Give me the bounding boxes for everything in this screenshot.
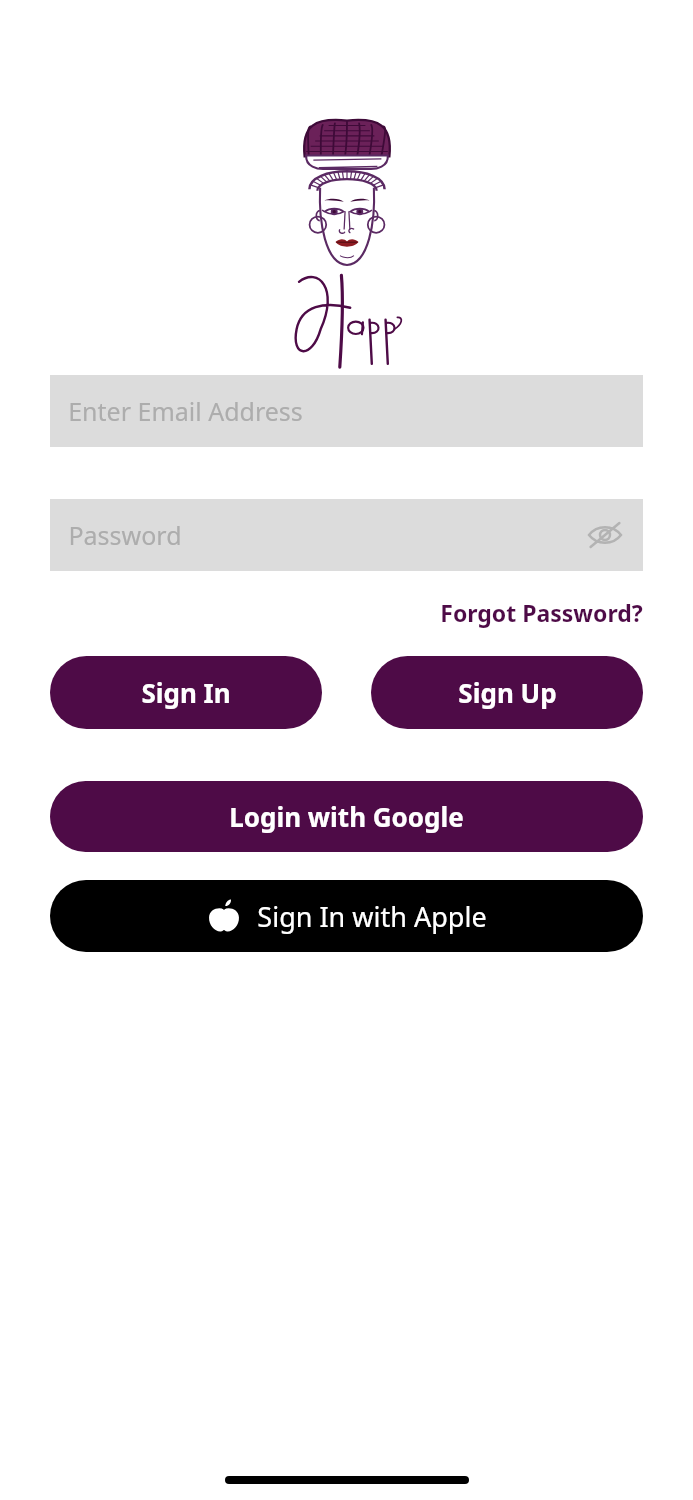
staticText: Sign Up bbox=[458, 675, 557, 710]
button[interactable]: Sign In with Apple bbox=[50, 880, 643, 952]
staticText: Sign In with Apple bbox=[257, 898, 487, 935]
staticText: Forgot Password? bbox=[440, 597, 643, 628]
staticText: Login with Google bbox=[229, 799, 464, 834]
button[interactable]: Sign Up bbox=[371, 656, 643, 729]
staticText: Password bbox=[68, 518, 182, 552]
button[interactable]: Toggle password visibility bbox=[577, 507, 633, 563]
button[interactable]: Forgot Password? bbox=[440, 593, 643, 632]
staticText: Sign In bbox=[141, 675, 231, 710]
button[interactable]: Login with Google bbox=[50, 781, 643, 852]
button[interactable]: Sign In bbox=[50, 656, 322, 729]
button[interactable]: Password bbox=[50, 499, 643, 571]
staticText: Enter Email Address bbox=[68, 394, 303, 428]
button[interactable]: Enter Email Address bbox=[50, 375, 643, 447]
